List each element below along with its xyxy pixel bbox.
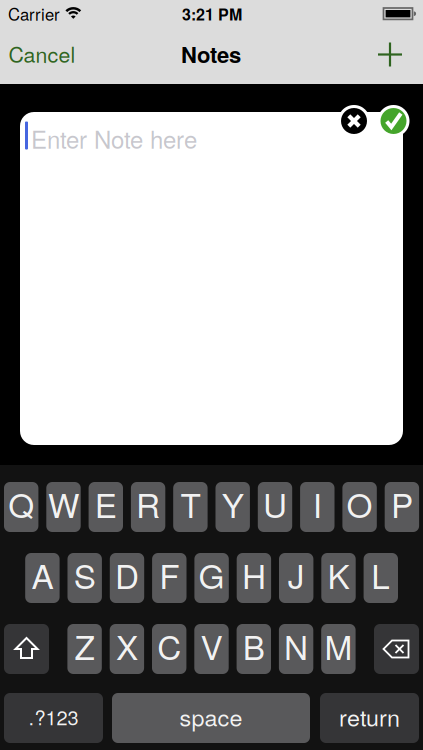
staticText: .?123 xyxy=(28,702,78,731)
button[interactable] xyxy=(338,105,370,137)
button[interactable]: L xyxy=(364,553,398,603)
staticText: Y xyxy=(222,480,244,527)
staticText: H xyxy=(242,551,266,598)
button[interactable]: V xyxy=(194,624,229,674)
button[interactable]: Y xyxy=(215,482,250,532)
staticText: P xyxy=(391,480,413,527)
button[interactable] xyxy=(377,105,409,137)
button[interactable]: N xyxy=(279,624,313,674)
button[interactable] xyxy=(376,40,404,68)
button[interactable]: K xyxy=(321,553,356,603)
button[interactable]: S xyxy=(67,553,102,603)
button[interactable]: D xyxy=(110,553,144,603)
staticText: J xyxy=(288,551,305,598)
button[interactable]: P xyxy=(385,482,419,532)
button[interactable]: M xyxy=(321,624,356,674)
staticText: Z xyxy=(75,622,95,669)
staticText: N xyxy=(284,622,308,669)
button[interactable]: Z xyxy=(67,624,102,674)
staticText: X xyxy=(116,622,138,669)
button[interactable]: T xyxy=(173,482,208,532)
staticText: G xyxy=(199,551,225,598)
staticText: 3:21 PM xyxy=(182,2,242,25)
staticText: C xyxy=(157,622,181,669)
staticText: M xyxy=(324,622,352,669)
staticText: W xyxy=(48,480,79,527)
staticText: Cancel xyxy=(8,38,75,69)
staticText: Q xyxy=(8,480,34,527)
staticText: O xyxy=(347,480,373,527)
staticText: E xyxy=(95,480,117,527)
button[interactable]: X xyxy=(110,624,144,674)
button[interactable]: J xyxy=(279,553,313,603)
staticText: space xyxy=(179,700,242,733)
button[interactable]: B xyxy=(237,624,271,674)
staticText: D xyxy=(115,551,139,598)
button[interactable]: H xyxy=(237,553,271,603)
staticText: Carrier xyxy=(8,2,60,25)
button[interactable]: return xyxy=(320,693,419,743)
button[interactable]: U xyxy=(258,482,292,532)
staticText: S xyxy=(74,551,96,598)
button[interactable]: O xyxy=(342,482,377,532)
button[interactable]: A xyxy=(25,553,60,603)
button[interactable]: space xyxy=(112,693,310,743)
button[interactable]: E xyxy=(89,482,123,532)
staticText: F xyxy=(159,551,179,598)
staticText: I xyxy=(313,480,322,527)
staticText: R xyxy=(136,480,160,527)
button[interactable] xyxy=(4,624,49,674)
staticText: U xyxy=(263,480,287,527)
button[interactable]: .?123 xyxy=(4,693,103,743)
staticText: A xyxy=(31,551,53,598)
staticText: L xyxy=(371,551,390,598)
staticText: return xyxy=(339,700,400,733)
button[interactable]: F xyxy=(152,553,186,603)
button[interactable]: W xyxy=(46,482,81,532)
button[interactable]: C xyxy=(152,624,186,674)
staticText: Notes xyxy=(181,38,241,70)
staticText: T xyxy=(180,480,200,527)
button[interactable]: R xyxy=(131,482,165,532)
button[interactable]: I xyxy=(300,482,334,532)
button[interactable] xyxy=(374,624,419,674)
button[interactable]: Q xyxy=(4,482,38,532)
button[interactable]: Cancel xyxy=(8,38,75,69)
staticText: Enter Note here xyxy=(31,121,197,156)
staticText: K xyxy=(327,551,349,598)
staticText: B xyxy=(243,622,265,669)
staticText: V xyxy=(200,622,222,669)
button[interactable]: G xyxy=(194,553,229,603)
